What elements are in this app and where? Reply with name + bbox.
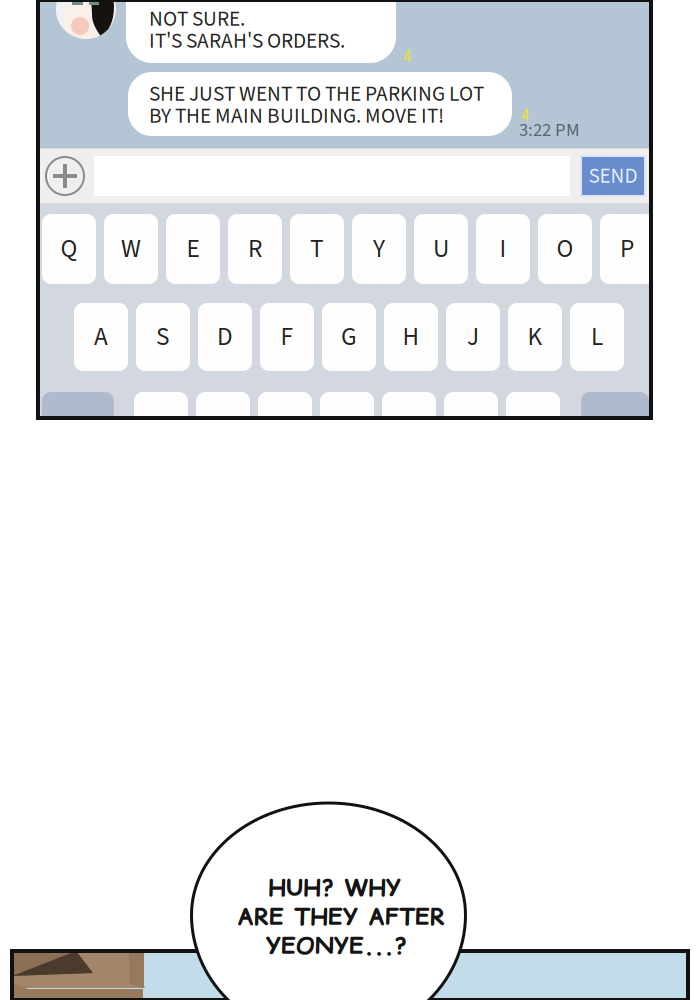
button[interactable]: Y	[352, 214, 406, 284]
button[interactable]: G	[322, 303, 376, 371]
button[interactable]: X	[196, 392, 250, 462]
button[interactable]: L	[570, 303, 624, 371]
button[interactable]: P	[600, 214, 654, 284]
button[interactable]: Q	[42, 214, 96, 284]
button[interactable]: M	[506, 392, 560, 462]
staticText: SHE JUST WENT TO THE PARKING LOT	[149, 79, 484, 109]
staticText: P	[620, 231, 634, 267]
staticText: L	[591, 319, 603, 355]
button[interactable]: J	[446, 303, 500, 371]
staticText: S	[156, 319, 170, 355]
staticText: 4	[403, 44, 412, 69]
button[interactable]: V	[320, 392, 374, 462]
staticText: O	[556, 231, 573, 267]
staticText: IT'S SARAH'S ORDERS.	[149, 26, 345, 56]
staticText: W	[121, 231, 141, 267]
staticText: I	[499, 231, 506, 267]
staticText: D	[217, 319, 233, 355]
staticText: X	[216, 409, 229, 445]
button[interactable]: F	[260, 303, 314, 371]
button[interactable]: R	[228, 214, 282, 284]
staticText: C	[278, 409, 292, 445]
staticText: U	[433, 231, 449, 267]
staticText: A	[94, 319, 108, 355]
button[interactable]: I	[476, 214, 530, 284]
staticText: SEND	[588, 161, 637, 191]
staticText: 3:22 PM	[519, 117, 580, 144]
staticText: B	[401, 409, 416, 445]
button[interactable]: K	[508, 303, 562, 371]
staticText: H	[402, 319, 419, 355]
staticText: ARE THEY AFTER	[237, 900, 445, 933]
button[interactable]: W	[104, 214, 158, 284]
staticText: G	[341, 319, 357, 355]
staticText: YEONYE...?	[266, 929, 407, 962]
staticText: NOT SURE.	[149, 4, 245, 34]
staticText: J	[467, 319, 479, 355]
staticText: N	[463, 409, 479, 445]
staticText: K	[527, 319, 542, 355]
staticText: T	[310, 231, 324, 267]
staticText: BY THE MAIN BUILDING. MOVE IT!	[149, 101, 444, 131]
button[interactable]: Keyboard key	[42, 392, 114, 462]
button[interactable]: T	[290, 214, 344, 284]
button[interactable]: N	[444, 392, 498, 462]
button[interactable]: U	[414, 214, 468, 284]
staticText: Q	[60, 231, 77, 267]
staticText: R	[248, 231, 262, 267]
button[interactable]: Keyboard key	[581, 392, 649, 462]
button[interactable]: Z	[134, 392, 188, 462]
button[interactable]: A	[74, 303, 128, 371]
staticText: HUH? WHY	[268, 871, 401, 904]
button[interactable]: D	[198, 303, 252, 371]
staticText: Y	[373, 231, 385, 267]
button[interactable]: E	[166, 214, 220, 284]
button[interactable]: B	[382, 392, 436, 462]
button[interactable]: C	[258, 392, 312, 462]
staticText: 4	[521, 103, 530, 128]
button[interactable]: O	[538, 214, 592, 284]
staticText: E	[186, 231, 199, 267]
staticText: Z	[154, 409, 168, 445]
button[interactable]: S	[136, 303, 190, 371]
staticText: M	[524, 409, 542, 445]
staticText: F	[280, 319, 293, 355]
button[interactable]: H	[384, 303, 438, 371]
staticText: V	[340, 409, 353, 445]
button[interactable]: Add attachment	[46, 157, 84, 195]
button[interactable]: SEND	[581, 156, 645, 196]
